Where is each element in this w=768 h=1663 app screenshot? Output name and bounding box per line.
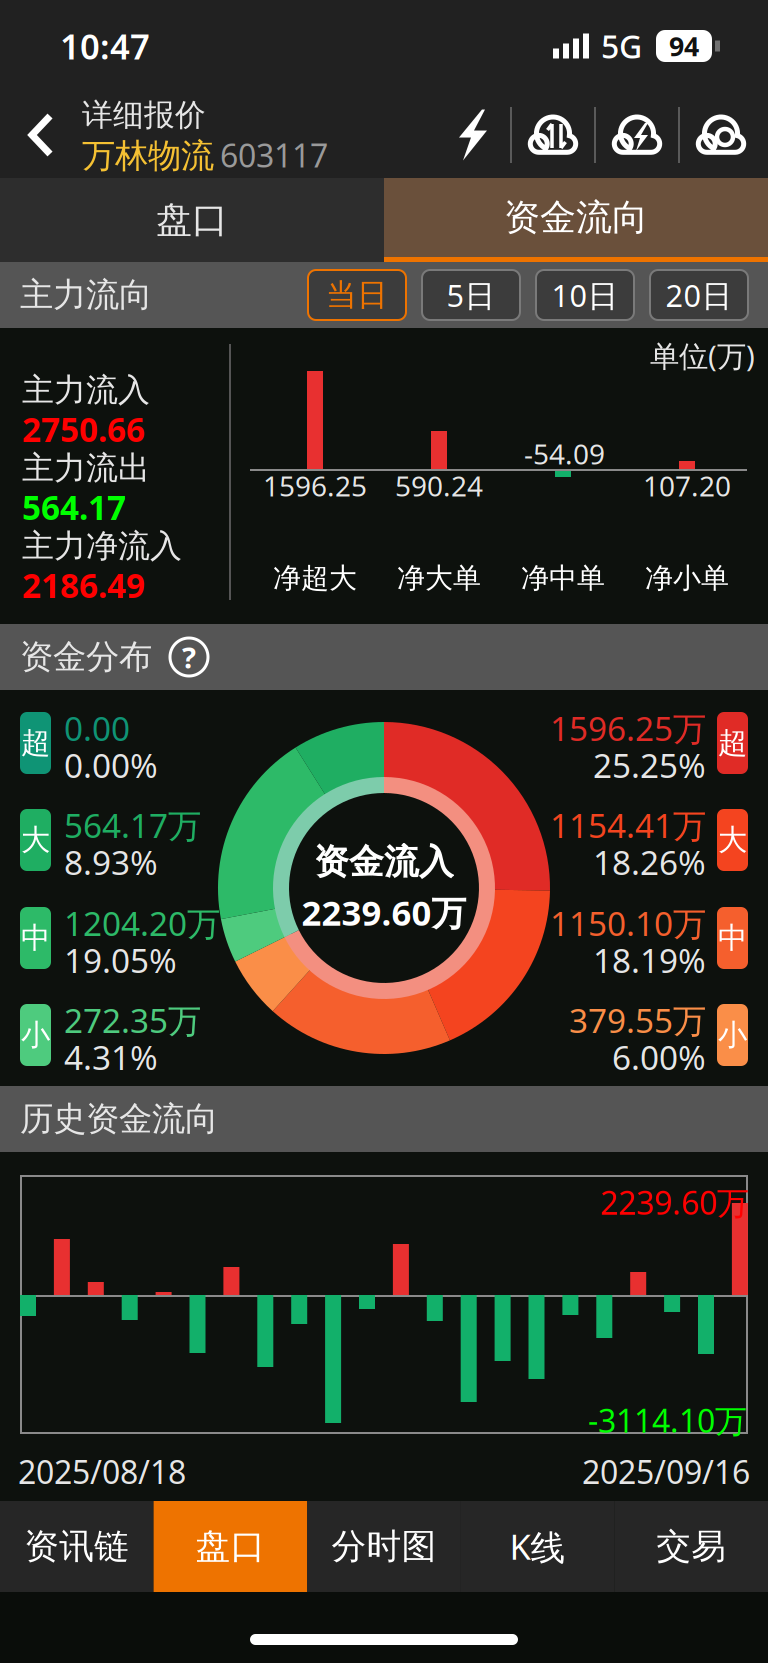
- button[interactable]: Cloud sync: [512, 101, 594, 169]
- staticText: 交易: [656, 1525, 726, 1568]
- staticText: 1596.25万: [550, 706, 706, 750]
- button[interactable]: 20日: [650, 270, 748, 320]
- staticText: -54.09: [524, 435, 605, 472]
- button[interactable]: Back: [0, 92, 82, 178]
- button[interactable]: Cloud trade: [596, 101, 678, 169]
- staticText: 25.25%: [593, 743, 706, 787]
- button[interactable]: Cloud alerts: [680, 101, 762, 169]
- staticText: 小: [718, 1017, 747, 1053]
- staticText: 5G: [601, 25, 642, 67]
- staticText: 中: [718, 920, 747, 956]
- staticText: 18.26%: [593, 840, 706, 884]
- button[interactable]: 交易: [614, 1501, 768, 1592]
- button[interactable]: 盘口: [154, 1501, 307, 1592]
- staticText: 0.00%: [64, 743, 158, 787]
- staticText: 超: [718, 725, 747, 761]
- staticText: 272.35万: [64, 998, 201, 1042]
- staticText: 0.00: [64, 706, 130, 750]
- staticText: 2025/09/16: [582, 1450, 750, 1493]
- staticText: 小: [21, 1017, 50, 1053]
- staticText: 主力流入: [22, 370, 150, 410]
- staticText: 10日: [551, 275, 618, 315]
- staticText: 564.17: [22, 485, 126, 529]
- staticText: 2239.60万: [600, 1181, 749, 1223]
- staticText: 资金流向: [504, 195, 648, 240]
- staticText: 1204.20万: [64, 901, 220, 945]
- staticText: -3114.10万: [588, 1399, 747, 1441]
- staticText: 564.17万: [64, 803, 201, 847]
- staticText: 5日: [446, 275, 495, 315]
- button[interactable]: 盘口: [0, 178, 384, 262]
- staticText: 净小单: [645, 561, 729, 595]
- staticText: 94: [669, 28, 699, 64]
- staticText: 净中单: [521, 561, 605, 595]
- staticText: 1154.41万: [550, 803, 706, 847]
- staticText: 盘口: [195, 1525, 265, 1568]
- staticText: 19.05%: [64, 938, 177, 982]
- staticText: ?: [182, 637, 196, 676]
- staticText: 资金分布: [20, 636, 152, 677]
- button[interactable]: 资金流向: [384, 178, 768, 262]
- button[interactable]: Quick trade: [436, 101, 510, 169]
- staticText: 盘口: [156, 198, 228, 242]
- staticText: 2025/08/18: [18, 1450, 186, 1493]
- staticText: 中: [21, 920, 50, 956]
- staticText: 107.20: [643, 467, 731, 504]
- staticText: 大: [718, 822, 747, 858]
- staticText: 主力流出: [22, 448, 150, 488]
- staticText: 历史资金流向: [20, 1098, 218, 1139]
- button[interactable]: 当日: [308, 270, 406, 320]
- staticText: 2239.60万: [301, 889, 466, 935]
- staticText: 分时图: [331, 1525, 436, 1568]
- staticText: 2186.49: [22, 563, 145, 607]
- staticText: 大: [21, 822, 50, 858]
- staticText: 10:47: [60, 23, 150, 69]
- staticText: 1150.10万: [550, 901, 706, 945]
- staticText: K线: [510, 1523, 566, 1570]
- button[interactable]: 10日: [536, 270, 634, 320]
- staticText: 6.00%: [612, 1035, 706, 1079]
- staticText: 资金流入: [314, 841, 454, 883]
- staticText: 590.24: [395, 467, 483, 504]
- staticText: 主力流向: [20, 274, 152, 315]
- staticText: 资讯链: [24, 1525, 129, 1568]
- staticText: 20日: [665, 275, 732, 315]
- button[interactable]: 分时图: [307, 1501, 461, 1592]
- staticText: 主力净流入: [22, 526, 182, 566]
- staticText: 2750.66: [22, 407, 145, 451]
- button[interactable]: K线: [461, 1501, 614, 1592]
- staticText: 603117: [220, 134, 328, 176]
- button[interactable]: 资讯链: [0, 1501, 154, 1592]
- staticText: 18.19%: [593, 938, 706, 982]
- staticText: 8.93%: [64, 840, 158, 884]
- staticText: 1596.25: [263, 467, 367, 504]
- staticText: 详细报价: [82, 96, 206, 134]
- staticText: 379.55万: [569, 998, 706, 1042]
- button[interactable]: 5日: [422, 270, 520, 320]
- staticText: 4.31%: [64, 1035, 158, 1079]
- staticText: 超: [21, 725, 50, 761]
- staticText: 当日: [326, 276, 388, 314]
- staticText: 单位(万): [650, 336, 755, 375]
- staticText: 万林物流: [82, 135, 214, 176]
- staticText: 净大单: [397, 561, 481, 595]
- staticText: 净超大: [273, 561, 357, 595]
